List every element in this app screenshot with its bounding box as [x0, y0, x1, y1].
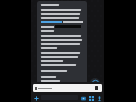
button[interactable]: Scroll to bottom: [90, 78, 100, 88]
button[interactable]: Voice message: [96, 95, 102, 101]
button[interactable]: Attach: [33, 84, 102, 92]
button[interactable]: Camera: [80, 95, 86, 101]
button[interactable]: Attach: [95, 86, 98, 90]
button[interactable]: Add attachment: [33, 95, 39, 101]
button[interactable]: [37, 1, 87, 88]
button[interactable]: Gallery: [88, 95, 94, 101]
